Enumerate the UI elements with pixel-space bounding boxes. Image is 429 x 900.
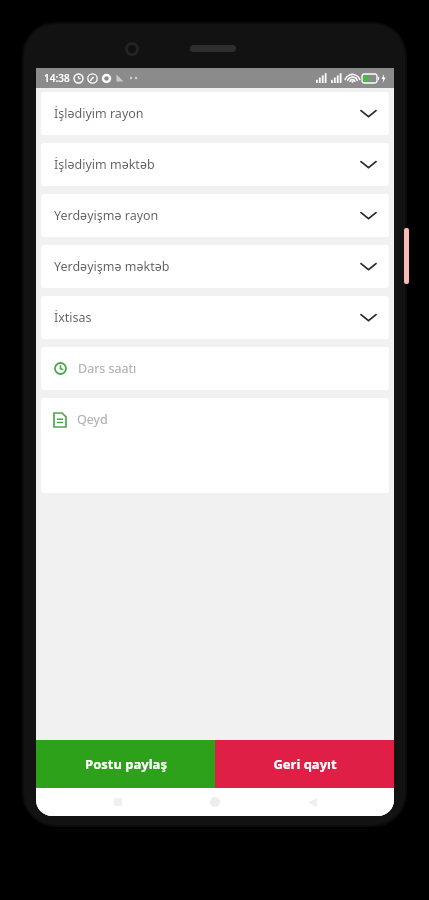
staticText: Yerdəyişmə rayon [54,207,159,224]
staticText: Dars saatı [78,360,137,377]
staticText: Yerdəyişmə məktəb [54,258,170,275]
staticText: Qeyd [77,411,108,428]
button[interactable]: Postu paylaş [36,740,215,788]
staticText: İşlədiyim məktəb [54,156,155,173]
staticText: 14:38 [44,71,70,85]
button[interactable]: İşlədiyim məktəb [41,143,389,186]
staticText: İxtisas [54,309,92,326]
button[interactable]: İşlədiyim rayon [41,92,389,135]
button[interactable]: Yerdəyişmə rayon [41,194,389,237]
staticText: Postu paylaş [85,755,167,773]
button[interactable]: Yerdəyişmə məktəb [41,245,389,288]
button[interactable]: Dars saatı [41,347,389,390]
button[interactable]: Back [297,788,327,816]
button[interactable]: Home [200,788,230,816]
button[interactable]: Qeyd [41,398,389,493]
staticText: İşlədiyim rayon [54,105,144,122]
staticText: Geri qayıt [273,755,337,773]
button[interactable]: Geri qayıt [215,740,394,788]
button[interactable]: Recents [103,788,133,816]
button[interactable]: İxtisas [41,296,389,339]
other: Qeyd [54,413,66,427]
other: Dars saatı [54,362,67,375]
